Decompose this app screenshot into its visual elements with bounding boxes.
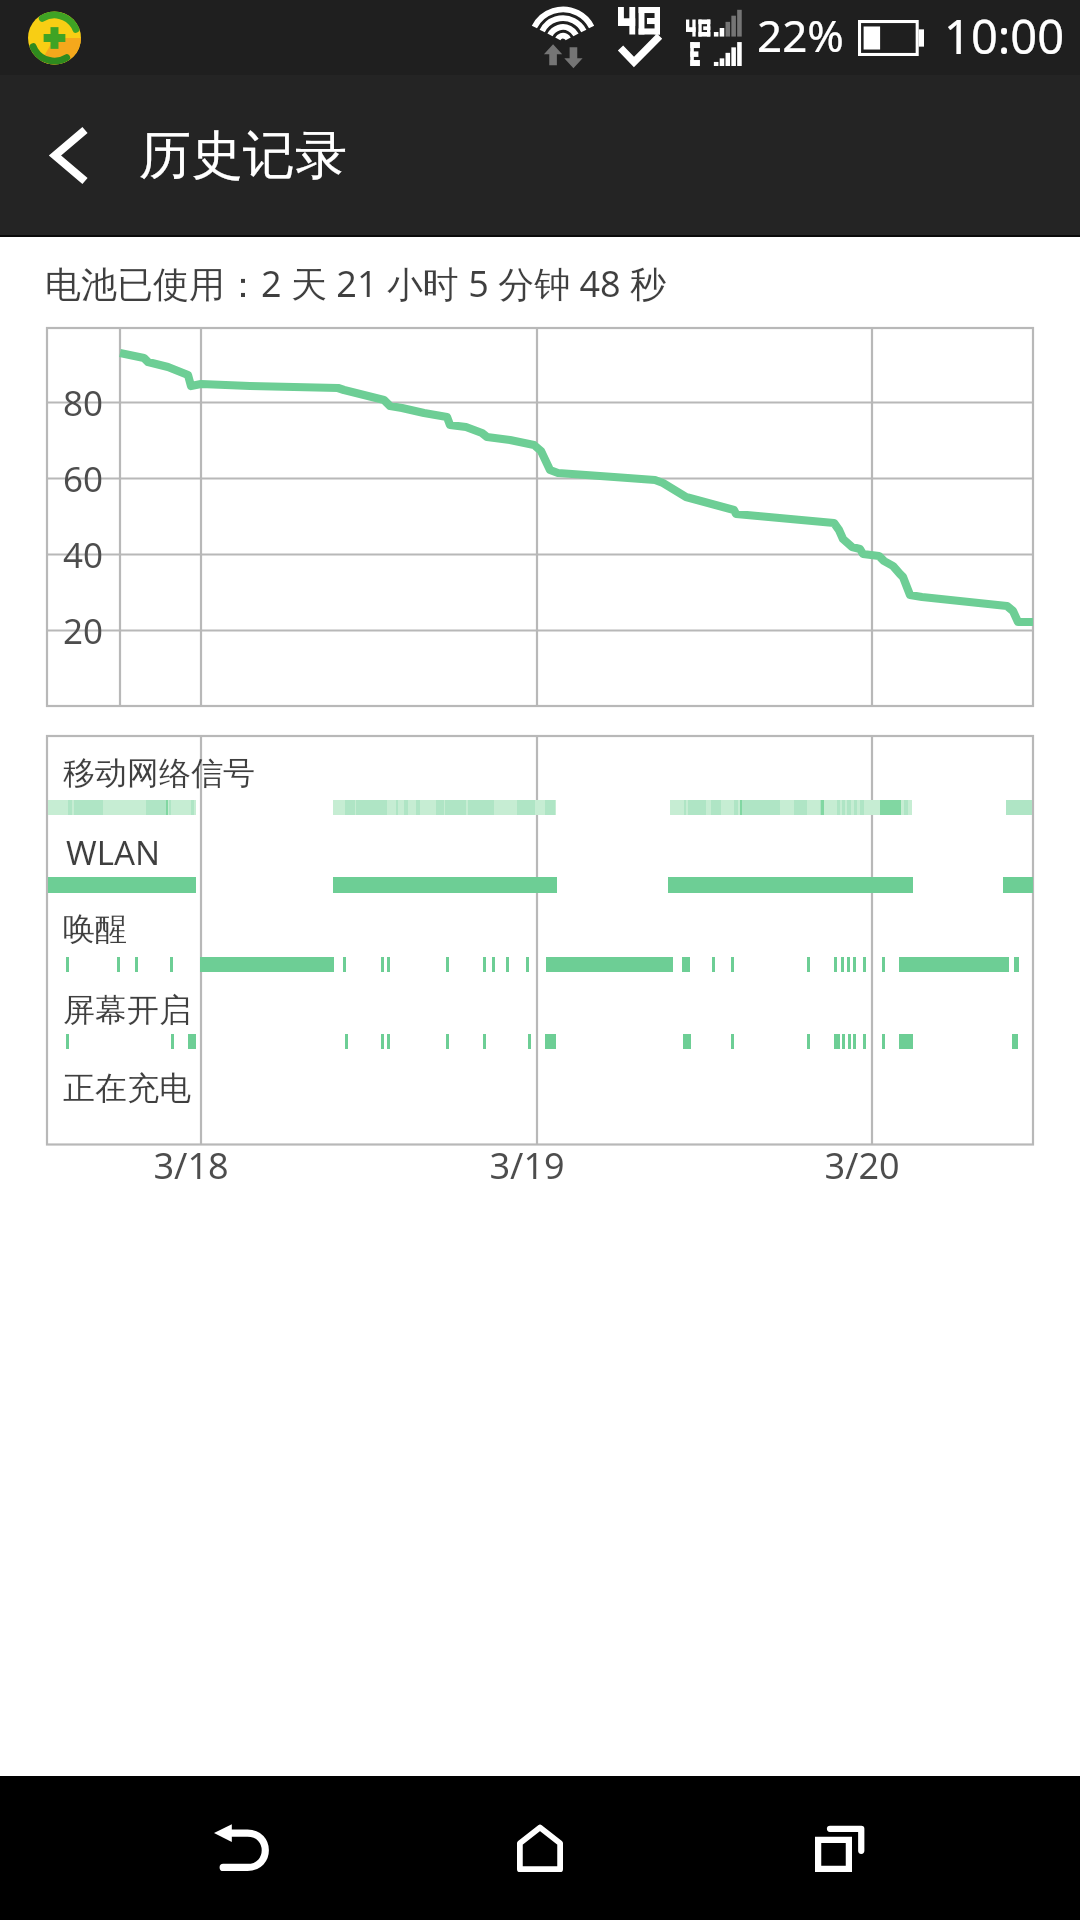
button[interactable]: Recents [750,1776,930,1920]
staticText: 10:00 [944,4,1065,68]
button[interactable]: Back [0,75,137,237]
staticText: 80 [63,379,104,427]
staticText: 唤醒 [63,909,127,949]
staticText: 移动网络信号 [63,753,255,793]
staticText: 历史记录 [139,123,347,189]
staticText: WLAN [66,830,161,875]
staticText: 40 [63,531,104,579]
staticText: 60 [63,455,104,503]
staticText: 3/18 [101,1141,281,1190]
staticText: 3/19 [437,1141,617,1190]
staticText: 电池已使用：2 天 21 小时 5 分钟 48 秒 [45,259,667,308]
staticText: 20 [63,607,104,655]
button[interactable]: Back [151,1776,331,1920]
staticText: 22% [757,5,844,65]
staticText: 正在充电 [63,1068,191,1108]
staticText: 屏幕开启 [63,990,191,1030]
staticText: 3/20 [772,1141,952,1190]
button[interactable]: Home [450,1776,630,1920]
